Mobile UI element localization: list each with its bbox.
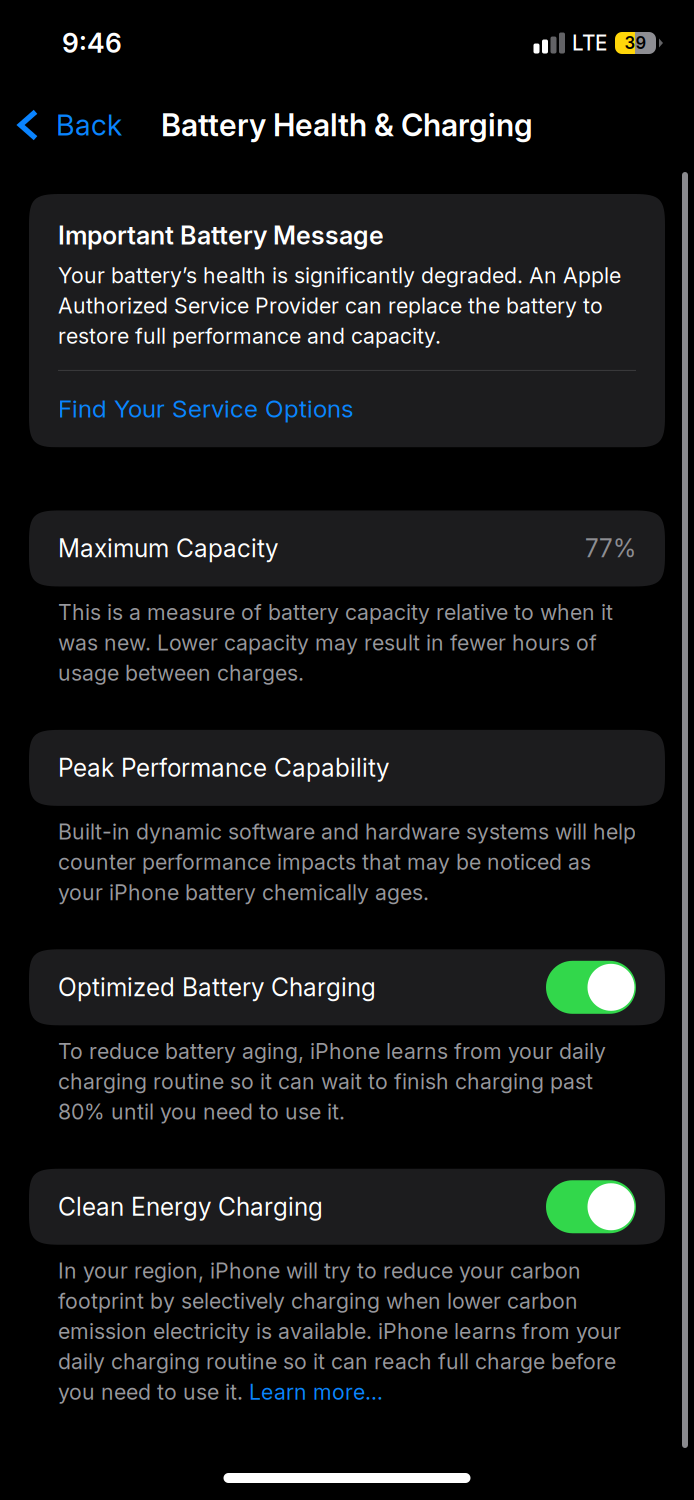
staticText: Battery Health & Charging	[161, 106, 533, 143]
button[interactable]: Back	[0, 96, 134, 154]
staticText: Peak Performance Capability	[58, 753, 389, 783]
button[interactable]: Maximum Capacity	[0, 510, 694, 586]
staticText: Built-in dynamic software and hardware s…	[58, 819, 636, 905]
button[interactable]: Peak Performance Capability	[0, 730, 694, 806]
staticText: Clean Energy Charging	[58, 1192, 323, 1222]
button[interactable]: Optimized Battery Charging	[0, 949, 694, 1025]
staticText: 9:46	[62, 27, 122, 59]
staticText: In your region, iPhone will try to reduc…	[58, 1258, 621, 1405]
staticText: LTE	[572, 30, 607, 55]
button[interactable]: Clean Energy Charging	[0, 1169, 694, 1245]
staticText: 39	[624, 33, 646, 53]
staticText: To reduce battery aging, iPhone learns f…	[58, 1038, 606, 1125]
staticText: 77%	[585, 534, 636, 563]
staticText: Find Your Service Options	[58, 394, 354, 423]
button[interactable]: Find Your Service Options	[58, 371, 636, 423]
staticText: Maximum Capacity	[58, 534, 278, 563]
staticText: This is a measure of battery capacity re…	[58, 599, 613, 686]
staticText: Important Battery Message	[58, 220, 384, 250]
staticText: Optimized Battery Charging	[58, 972, 376, 1002]
staticText: Back	[56, 108, 122, 142]
staticText: Your battery’s health is significantly d…	[58, 262, 621, 349]
